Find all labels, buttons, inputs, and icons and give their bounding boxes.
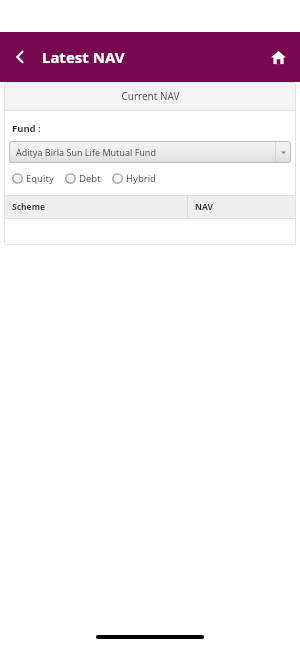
button[interactable]: Home [264,43,292,71]
button[interactable]: Equity [11,170,55,187]
staticText: Equity [26,172,54,185]
staticText: NAV [195,201,213,213]
button[interactable]: Aditya Birla Sun Life Mutual Fund [9,141,291,163]
staticText: Aditya Birla Sun Life Mutual Fund [16,146,156,158]
button[interactable]: Back [6,43,34,71]
staticText: Current NAV [121,89,180,103]
staticText: Hybrid [126,172,156,185]
button[interactable]: Hybrid [111,170,157,187]
staticText: Scheme [12,201,46,213]
button[interactable]: Current NAV [4,82,296,110]
staticText: Fund : [12,122,41,135]
staticText: Latest NAV [42,47,125,67]
button[interactable]: Debt [64,170,102,187]
staticText: Debt [79,172,101,185]
